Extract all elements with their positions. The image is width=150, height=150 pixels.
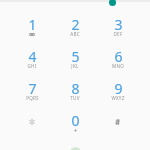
staticText: 9 — [114, 79, 123, 98]
staticText: GHI — [27, 63, 37, 69]
button[interactable]: Key 2 — [55, 12, 95, 42]
staticText: DEF — [113, 31, 123, 37]
staticText: PQRS — [26, 95, 39, 101]
staticText: JKL — [71, 63, 79, 69]
button[interactable]: Key 6 — [98, 44, 138, 74]
staticText: ABC — [70, 31, 80, 37]
staticText: MNO — [112, 63, 124, 69]
staticText: 4 — [28, 47, 37, 66]
button[interactable]: Key 0 — [55, 108, 95, 138]
staticText: 5 — [71, 47, 80, 66]
staticText: 8 — [71, 79, 80, 98]
button[interactable]: Key * — [12, 108, 52, 138]
button[interactable]: Call — [70, 147, 81, 150]
button[interactable]: Key 4 — [12, 44, 52, 74]
button[interactable]: Key 3 — [98, 12, 138, 42]
staticText: 2 — [71, 15, 80, 34]
staticText: 1 — [28, 15, 37, 34]
staticText: 0 — [71, 111, 80, 130]
staticText: 6 — [114, 47, 123, 66]
button[interactable]: Key # — [98, 108, 138, 138]
button[interactable]: Key 7 — [12, 76, 52, 106]
staticText: 3 — [114, 15, 123, 34]
staticText: WXYZ — [111, 95, 125, 101]
button[interactable]: Key 1 — [12, 12, 52, 42]
button[interactable]: Key 8 — [55, 76, 95, 106]
other: Call status — [109, 0, 116, 6]
staticText: TUV — [70, 95, 80, 101]
button[interactable]: Key 9 — [98, 76, 138, 106]
staticText: 7 — [28, 79, 37, 98]
button[interactable]: Key 5 — [55, 44, 95, 74]
